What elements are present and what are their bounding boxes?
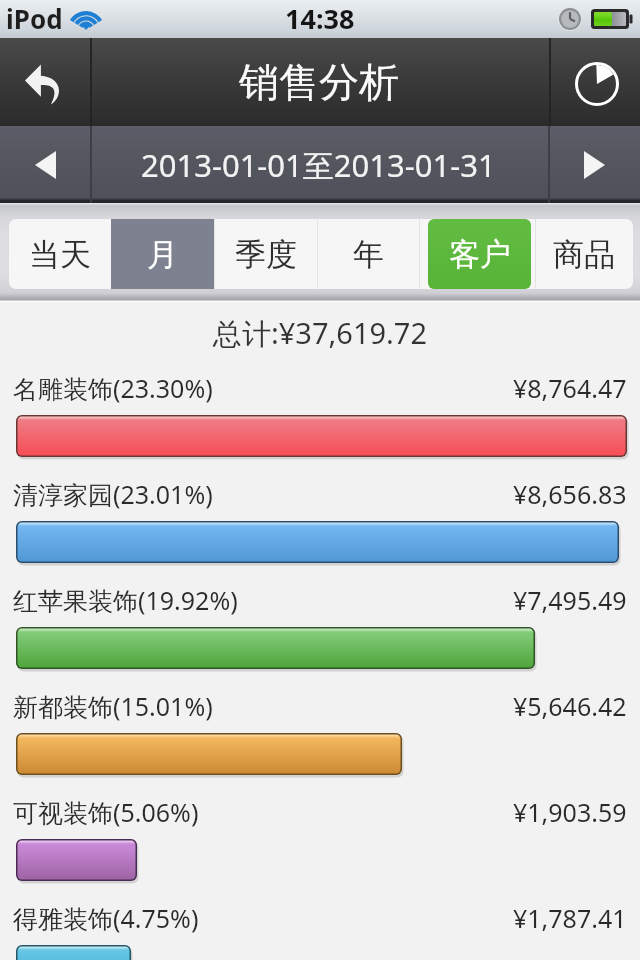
button[interactable]: 商品 — [535, 219, 633, 289]
staticText: ¥8,764.47 — [513, 371, 627, 405]
staticText: 2013-01-01至2013-01-31 — [141, 144, 496, 186]
button[interactable]: Pie chart — [550, 38, 640, 126]
button[interactable]: 当天 — [9, 219, 111, 289]
button[interactable]: Back — [0, 38, 90, 126]
button[interactable]: 季度 — [214, 219, 317, 289]
staticText: ¥5,646.42 — [513, 689, 627, 723]
staticText: iPod — [6, 1, 63, 36]
staticText: 得雅装饰(4.75%) — [13, 901, 199, 935]
staticText: 清淳家园(23.01%) — [13, 477, 213, 511]
button[interactable]: 客户 — [419, 219, 535, 289]
staticText: 月 — [147, 235, 178, 274]
button[interactable]: Previous period — [0, 126, 90, 203]
staticText: 名雕装饰(23.30%) — [13, 371, 213, 405]
staticText: ¥8,656.83 — [513, 477, 627, 511]
staticText: 新都装饰(15.01%) — [13, 689, 213, 723]
staticText: ¥7,495.49 — [513, 583, 627, 617]
button[interactable]: 月 — [111, 219, 214, 289]
staticText: 红苹果装饰(19.92%) — [13, 583, 238, 617]
staticText: 销售分析 — [239, 57, 399, 107]
staticText: 年 — [353, 235, 384, 274]
staticText: 14:38 — [285, 0, 355, 37]
staticText: 季度 — [235, 235, 297, 274]
staticText: ¥1,787.41 — [513, 901, 627, 935]
button[interactable]: Next period — [548, 126, 640, 203]
staticText: 客户 — [449, 235, 511, 274]
staticText: ¥1,903.59 — [513, 795, 627, 829]
staticText: 当天 — [29, 235, 91, 274]
button[interactable]: 年 — [317, 219, 419, 289]
staticText: 商品 — [553, 235, 615, 274]
staticText: 可视装饰(5.06%) — [13, 795, 199, 829]
staticText: 总计:¥37,619.72 — [213, 313, 428, 353]
